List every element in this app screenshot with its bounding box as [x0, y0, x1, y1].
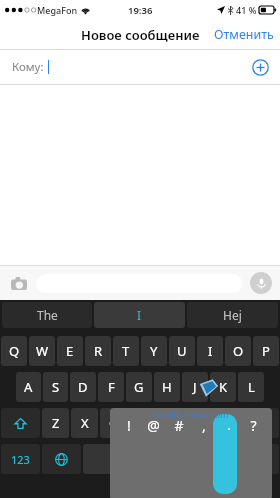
staticText: D	[78, 378, 88, 396]
staticText: #	[174, 416, 184, 435]
button[interactable]: R	[85, 336, 111, 366]
button[interactable]: O	[225, 336, 251, 366]
staticText: S	[52, 378, 60, 396]
staticText: .	[227, 416, 231, 434]
button[interactable]: 123	[1, 444, 40, 474]
staticText: J	[193, 378, 197, 396]
button[interactable]: L	[238, 372, 264, 402]
staticText: T	[122, 342, 130, 360]
staticText: 123	[11, 452, 30, 467]
button[interactable]: ?	[241, 408, 266, 442]
staticText: !	[127, 416, 131, 435]
button[interactable]: Shift	[1, 408, 40, 438]
button[interactable]: Add contact	[248, 55, 272, 79]
button[interactable]: I	[197, 336, 223, 366]
staticText: W	[36, 342, 49, 360]
button[interactable]: A	[16, 372, 41, 402]
button[interactable]: T	[113, 336, 139, 366]
staticText: 19:36	[128, 4, 153, 17]
button[interactable]: M	[213, 408, 239, 438]
button[interactable]: Change keyboard language	[42, 444, 81, 474]
button[interactable]: Voice message	[250, 272, 272, 294]
button[interactable]: E	[57, 336, 83, 366]
staticText: ,	[202, 416, 206, 435]
button[interactable]	[220, 444, 279, 474]
button[interactable]: J	[182, 372, 208, 402]
button[interactable]: C	[100, 408, 127, 438]
button[interactable]: Q	[1, 336, 27, 366]
button[interactable]: B	[157, 408, 183, 438]
button[interactable]: @	[141, 408, 166, 442]
button[interactable]	[83, 444, 218, 474]
button[interactable]: Hej	[187, 302, 278, 328]
button[interactable]: K	[210, 372, 236, 402]
staticText: E	[66, 342, 74, 360]
staticText: U	[177, 342, 187, 360]
staticText: O	[233, 342, 244, 360]
staticText: B	[166, 414, 175, 432]
staticText: The	[37, 307, 58, 323]
staticText: A	[24, 378, 33, 396]
button[interactable]: !	[116, 408, 141, 442]
button[interactable]: #	[166, 408, 191, 442]
button[interactable]: Z	[42, 408, 69, 438]
staticText: R	[94, 342, 103, 360]
button[interactable]: Delete	[241, 408, 279, 438]
button[interactable]: Отменить	[208, 20, 280, 49]
staticText: F	[108, 378, 115, 396]
button[interactable]: G	[126, 372, 152, 402]
button[interactable]	[213, 414, 237, 494]
button[interactable]: D	[70, 372, 96, 402]
staticText: I	[137, 307, 142, 323]
staticText: MegaFon	[37, 4, 78, 16]
staticText: @	[147, 416, 160, 435]
staticText: H	[162, 378, 172, 396]
button[interactable]: The	[2, 302, 92, 328]
staticText: Кому:	[12, 59, 44, 75]
staticText: Z	[52, 414, 60, 432]
staticText: Q	[9, 342, 20, 360]
staticText: Hej	[223, 307, 242, 323]
button[interactable]: V	[129, 408, 155, 438]
button[interactable]: Camera	[8, 272, 30, 294]
staticText: X	[81, 414, 89, 432]
button[interactable]: W	[29, 336, 55, 366]
button[interactable]: Y	[141, 336, 167, 366]
button[interactable]: N	[185, 408, 211, 438]
staticText: ?	[250, 416, 257, 435]
button[interactable]: P	[253, 336, 279, 366]
button[interactable]: S	[43, 372, 68, 402]
button[interactable]: .	[216, 408, 241, 442]
staticText: M	[220, 414, 232, 432]
staticText: L	[248, 378, 255, 396]
button[interactable]: U	[169, 336, 195, 366]
staticText: Новое сообщение	[81, 26, 200, 44]
staticText: P	[262, 342, 270, 360]
staticText: Отменить	[214, 26, 274, 43]
staticText: 41 %	[236, 4, 257, 16]
staticText: G	[134, 378, 144, 396]
button[interactable]: H	[154, 372, 180, 402]
staticText: Y	[150, 342, 158, 360]
button[interactable]: I	[94, 302, 185, 328]
button[interactable]: X	[71, 408, 98, 438]
staticText: K	[219, 378, 228, 396]
staticText: mobile-review.com	[153, 409, 229, 421]
button[interactable]: ,	[191, 408, 216, 442]
button[interactable]: F	[98, 372, 124, 402]
staticText: C	[109, 414, 118, 432]
staticText: N	[193, 414, 203, 432]
staticText: I	[208, 342, 213, 360]
